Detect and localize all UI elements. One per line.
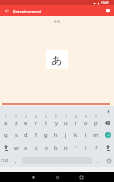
button[interactable]: 9	[81, 115, 91, 128]
staticText: j	[65, 131, 67, 139]
staticText: z	[15, 119, 18, 127]
button[interactable]: b	[51, 141, 61, 154]
button[interactable]: ?	[91, 141, 101, 154]
staticText: v	[45, 144, 48, 152]
staticText: o	[84, 119, 88, 127]
staticText: 3	[25, 115, 27, 119]
staticText: n	[64, 144, 68, 152]
staticText: h	[54, 131, 58, 139]
staticText: 1	[5, 115, 7, 119]
staticText: b	[54, 144, 58, 152]
button[interactable]: 7	[61, 115, 71, 128]
button[interactable]: h	[51, 128, 61, 141]
button[interactable]: ,	[9, 154, 22, 167]
staticText: あ	[51, 53, 63, 67]
staticText: t	[45, 119, 48, 127]
staticText: p	[94, 119, 98, 127]
button[interactable]: 5	[41, 115, 51, 128]
button[interactable]: g	[41, 128, 51, 141]
button[interactable]: q	[0, 128, 11, 141]
staticText: e	[24, 119, 28, 127]
button[interactable]: c	[31, 141, 41, 154]
staticText: l	[85, 131, 87, 139]
button[interactable]: d	[21, 128, 31, 141]
staticText: .	[97, 157, 99, 164]
button[interactable]: v	[41, 141, 51, 154]
staticText: 0	[95, 115, 97, 119]
button[interactable]: l	[81, 128, 91, 141]
staticText: Entrainement	[13, 8, 42, 14]
button[interactable]: ?123	[0, 154, 9, 167]
staticText: w	[14, 144, 19, 152]
button[interactable]: Back	[21, 172, 45, 182]
button[interactable]: Backspace	[101, 115, 114, 128]
staticText: 10:49	[101, 1, 109, 5]
button[interactable]: 4	[31, 115, 41, 128]
staticText: 2	[15, 115, 17, 119]
button[interactable]: 0	[91, 115, 101, 128]
staticText: ,	[15, 157, 17, 164]
staticText: c	[35, 144, 38, 152]
button[interactable]: Home	[45, 172, 69, 182]
button[interactable]: Shift	[0, 141, 11, 154]
button[interactable]: 1	[0, 115, 11, 128]
staticText: '	[75, 144, 77, 152]
staticText: r	[35, 119, 38, 127]
staticText: y	[55, 119, 58, 127]
button[interactable]: '	[71, 141, 81, 154]
staticText: 4	[35, 115, 37, 119]
button[interactable]: 8	[71, 115, 81, 128]
staticText: x	[24, 144, 28, 152]
staticText: i	[75, 119, 77, 127]
button[interactable]: Emoji	[103, 154, 114, 167]
staticText: 6/6	[54, 19, 61, 24]
staticText: 7	[65, 115, 67, 119]
button[interactable]: Caps lock	[101, 141, 114, 154]
staticText: s	[15, 131, 18, 139]
staticText: a	[4, 119, 8, 127]
staticText: 8	[75, 115, 77, 119]
staticText: g	[44, 131, 48, 139]
button[interactable]: f	[31, 128, 41, 141]
button[interactable]: j	[61, 128, 71, 141]
button[interactable]: s	[11, 128, 21, 141]
button[interactable]: 2	[11, 115, 21, 128]
button[interactable]: x	[21, 141, 31, 154]
staticText: ?	[95, 144, 98, 152]
staticText: ?123	[1, 158, 9, 163]
button[interactable]: Back	[0, 5, 13, 16]
staticText: 9	[85, 115, 87, 119]
button[interactable]: w	[11, 141, 21, 154]
staticText: q	[4, 131, 8, 139]
staticText: u	[64, 119, 68, 127]
staticText: f	[35, 131, 37, 139]
button[interactable]: !	[81, 141, 91, 154]
button[interactable]: m	[91, 128, 101, 141]
staticText: 5	[45, 115, 47, 119]
staticText: 6	[55, 115, 57, 119]
button[interactable]: 6	[51, 115, 61, 128]
staticText: m	[93, 131, 99, 139]
button[interactable]: .	[92, 154, 103, 167]
staticText: k	[74, 131, 78, 139]
button[interactable]: Notes	[102, 5, 114, 16]
button[interactable]: 3	[21, 115, 31, 128]
staticText: !	[85, 144, 87, 152]
button[interactable]: Recents	[69, 172, 93, 182]
button[interactable]: あ	[46, 50, 68, 69]
button[interactable]: Enter	[101, 128, 114, 141]
button[interactable]: k	[71, 128, 81, 141]
button[interactable]: n	[61, 141, 71, 154]
staticText: d	[24, 131, 28, 139]
